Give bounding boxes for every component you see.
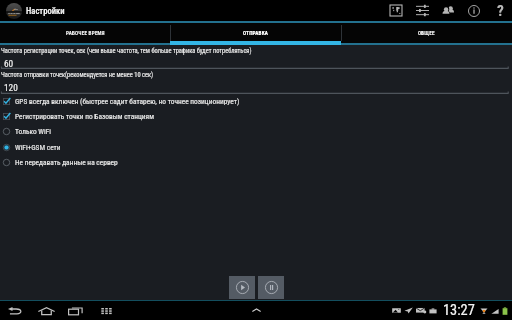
button[interactable]: WiFi+GSM сети	[0, 140, 512, 154]
staticText: Частота регистрации точек, сек (чем выше…	[1, 47, 252, 55]
staticText: Не передавать данные на сервер	[15, 158, 118, 167]
button[interactable]: GPS всегда включен (быстрее садит батаре…	[0, 94, 512, 108]
button[interactable]: Apps	[96, 301, 116, 320]
button[interactable]: ОБЩЕЕ	[341, 23, 512, 45]
button[interactable]: Settings	[409, 0, 435, 21]
staticText: Частота отправки точек(рекомендуется не …	[1, 71, 154, 79]
button[interactable]: Back	[5, 301, 25, 320]
staticText: 60	[4, 58, 14, 69]
staticText: WiFi+GSM сети	[15, 143, 61, 152]
button[interactable]: ОТПРАВКА	[170, 23, 341, 45]
button[interactable]: Pause	[258, 276, 284, 299]
button[interactable]: Recents	[65, 301, 85, 320]
staticText: Регистрировать точки по Базовым станциям	[15, 112, 154, 121]
button[interactable]: Home	[36, 301, 56, 320]
staticText: Только WiFi	[15, 127, 51, 136]
button[interactable]: Только WiFi	[0, 124, 512, 138]
button[interactable]: РАБОЧЕЕ ВРЕМЯ	[0, 23, 170, 45]
staticText: РАБОЧЕЕ ВРЕМЯ	[66, 30, 105, 36]
staticText: GPS всегда включен (быстрее садит батаре…	[15, 97, 240, 106]
button[interactable]: Help	[487, 0, 512, 21]
staticText: ОБЩЕЕ	[418, 30, 435, 36]
button[interactable]: People	[435, 0, 461, 21]
staticText: 13:27	[443, 302, 475, 319]
staticText: ?	[497, 2, 504, 20]
button[interactable]: Expand notifications	[245, 301, 267, 320]
staticText: Настройки	[26, 6, 65, 16]
button[interactable]: Play	[229, 276, 255, 299]
staticText: 120	[4, 82, 18, 93]
button[interactable]: Map	[383, 0, 409, 21]
button[interactable]: Регистрировать точки по Базовым станциям	[0, 109, 512, 123]
button[interactable]: Info	[461, 0, 487, 21]
button[interactable]: Не передавать данные на сервер	[0, 155, 512, 169]
staticText: ОТПРАВКА	[243, 30, 269, 36]
